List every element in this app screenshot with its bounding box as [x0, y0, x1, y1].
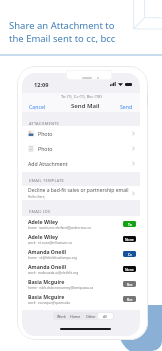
staticText: Basia Mcguire [28, 293, 65, 300]
staticText: Cancel [29, 103, 46, 110]
staticText: Adele Wiley [28, 218, 59, 225]
staticText: Photo [38, 130, 53, 137]
other: Open [132, 131, 135, 136]
button[interactable]: None [123, 266, 136, 272]
staticText: Hello there, [28, 195, 46, 199]
button[interactable]: Cc [123, 251, 136, 257]
button[interactable]: Bcc [123, 296, 136, 302]
staticText: Send [120, 103, 133, 110]
staticText: Other [86, 314, 96, 319]
staticText: work · malesuada.ut@eleifelit.org [28, 271, 79, 275]
staticText: Amanda Oneill [28, 248, 67, 255]
button[interactable]: Adele Wiley [22, 231, 140, 246]
button[interactable]: Basia Mcguire [22, 291, 140, 306]
button[interactable]: Home [68, 313, 83, 319]
staticText: work · eu.neque@quam.edu [28, 301, 71, 305]
staticText: Cc [128, 252, 132, 257]
other: Open [132, 191, 135, 196]
staticText: To [128, 222, 132, 227]
button[interactable]: Bcc [123, 281, 136, 287]
button[interactable]: Work [54, 313, 68, 319]
staticText: home · sit@felisfeltuatlampo.org [28, 256, 77, 260]
button[interactable]: Photo [22, 126, 140, 141]
button[interactable]: Amanda Oneill [22, 246, 140, 261]
staticText: None [125, 237, 134, 242]
button[interactable]: Cancel [29, 103, 46, 110]
button[interactable]: Decline a bad-fit sales or partnership e… [22, 186, 140, 200]
button[interactable]: To [123, 221, 136, 227]
other: Open [132, 161, 135, 166]
staticText: Share an Attachment to [9, 19, 115, 32]
button[interactable]: Basia Mcguire [22, 276, 140, 291]
staticText: home · iaculis.nec.eleifend@pedesrisus.c… [28, 226, 91, 230]
staticText: EMAIL IDS [29, 209, 51, 214]
staticText: Basia Mcguire [28, 278, 65, 285]
staticText: Bcc [127, 282, 133, 287]
staticText: 12:09 [34, 81, 49, 89]
staticText: To (1), Cc (1), Bcc (18) [61, 94, 102, 100]
button[interactable]: All [98, 313, 113, 319]
button[interactable]: Photo [22, 141, 140, 156]
staticText: Decline a bad-fit sales or partnership e… [28, 187, 129, 194]
staticText: work · et.nunc@tellusnunc.ca [28, 241, 72, 245]
staticText: ATTACHMENTS [29, 121, 60, 126]
button[interactable]: Adele Wiley [22, 216, 140, 231]
staticText: the Email sent to cc, bcc [9, 32, 116, 45]
button[interactable]: Send [120, 103, 133, 110]
staticText: Home [70, 314, 81, 319]
staticText: All [103, 314, 108, 319]
staticText: Bcc [127, 297, 133, 302]
staticText: home · nibh.dolor.nonummy@lamipusau.ca [28, 286, 94, 290]
button[interactable]: Add Attachment [22, 156, 140, 171]
staticText: Amanda Oneill [28, 263, 67, 270]
button[interactable]: Amanda Oneill [22, 261, 140, 276]
staticText: Work [57, 314, 66, 319]
button[interactable]: Other [83, 313, 98, 319]
staticText: None [125, 267, 134, 272]
staticText: EMAIL TEMPLATE [29, 178, 65, 183]
staticText: Adele Wiley [28, 233, 59, 240]
staticText: Send Mail [71, 102, 100, 110]
staticText: Photo [38, 145, 53, 152]
staticText: Add Attachment [28, 160, 68, 167]
button[interactable]: None [123, 236, 136, 242]
other: Open [132, 146, 135, 151]
